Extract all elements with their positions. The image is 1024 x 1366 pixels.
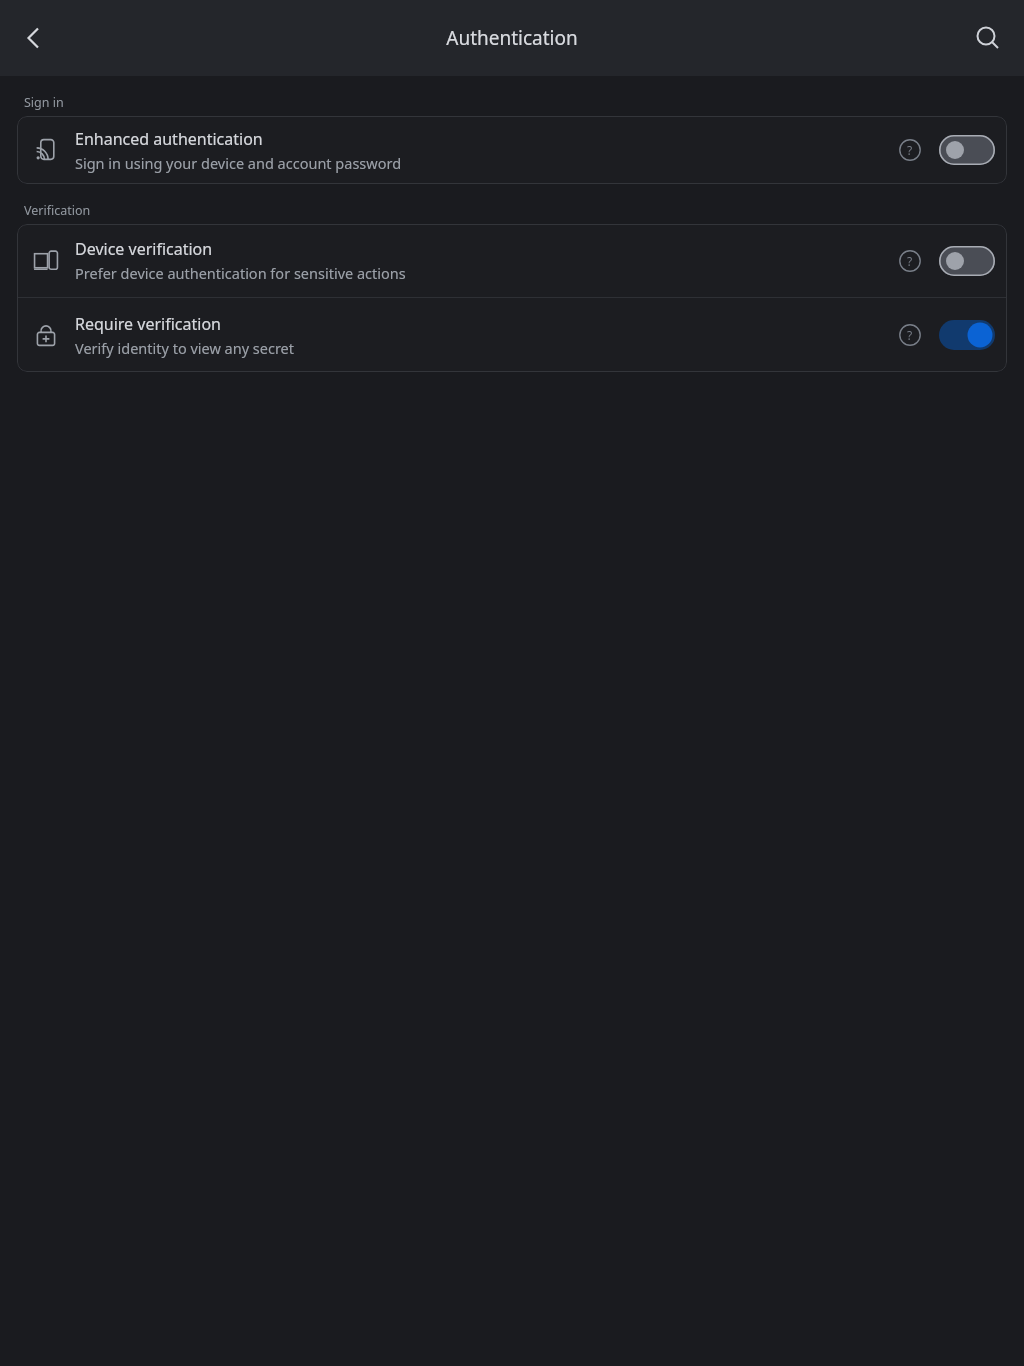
button[interactable]: Device verification (17, 224, 1007, 297)
staticText: Require verification (75, 313, 221, 335)
staticText: ? (907, 142, 913, 158)
button[interactable]: On (939, 320, 995, 350)
staticText: Enhanced authentication (75, 128, 263, 150)
button[interactable]: Back (8, 13, 58, 63)
button[interactable]: Off (939, 246, 995, 276)
staticText: Authentication (446, 25, 578, 51)
button[interactable]: Require verification (17, 298, 1007, 372)
button[interactable]: Help (888, 128, 932, 172)
button[interactable]: Off (939, 135, 995, 165)
staticText: Verify identity to view any secret (75, 338, 295, 358)
button[interactable]: Search (962, 13, 1012, 63)
staticText: Device verification (75, 238, 213, 260)
staticText: Verification (24, 202, 91, 219)
staticText: ? (907, 327, 913, 343)
button[interactable]: Help (888, 313, 932, 357)
button[interactable]: Help (888, 239, 932, 283)
staticText: Prefer device authentication for sensiti… (75, 263, 406, 283)
staticText: ? (907, 253, 913, 269)
button[interactable]: Enhanced authentication (17, 116, 1007, 184)
staticText: Sign in using your device and account pa… (75, 153, 402, 173)
staticText: Sign in (24, 94, 64, 111)
